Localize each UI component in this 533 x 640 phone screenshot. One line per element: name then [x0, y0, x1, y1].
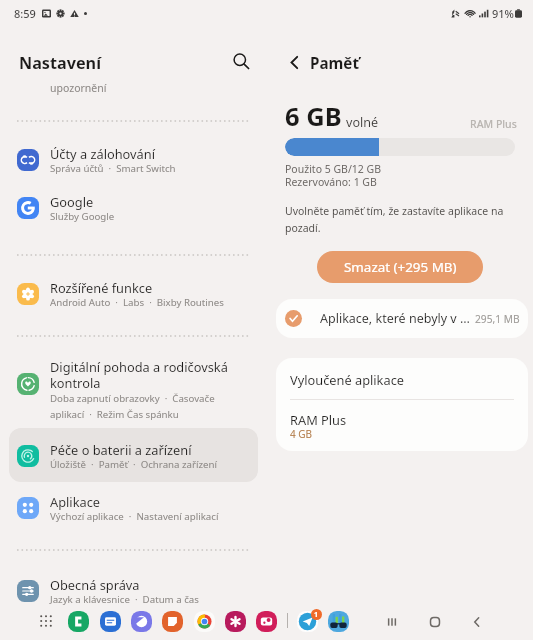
button[interactable]: Aplikace [9, 487, 257, 541]
button[interactable]: Messages [100, 611, 121, 632]
staticText: 1 [314, 610, 319, 620]
button[interactable]: Camera [256, 611, 277, 632]
staticText: 295,1 MB [475, 312, 520, 326]
button[interactable]: Vyloučené aplikace [276, 358, 528, 400]
button[interactable]: Aplikace, které nebyly v … [276, 299, 528, 338]
staticText: Účty a zálohování [50, 145, 155, 162]
button[interactable]: Účty a zálohování [9, 139, 257, 193]
button[interactable]: Chrome [194, 611, 215, 632]
staticText: volné [346, 114, 379, 131]
button[interactable]: Phone [68, 611, 89, 632]
staticText: 8:59 [14, 6, 36, 21]
staticText: RAM Plus [470, 117, 517, 131]
staticText: Rozšířené funkce [50, 279, 153, 296]
button[interactable]: Google [9, 187, 257, 241]
button[interactable]: Internet [131, 611, 152, 632]
button[interactable]: Search [226, 46, 256, 76]
staticText: 6 GB [285, 99, 342, 134]
staticText: Android Auto · Labs · Bixby Routines [50, 296, 224, 309]
staticText: Použito 5 GB/12 GB [285, 162, 382, 176]
button[interactable]: Gallery [225, 611, 246, 632]
button[interactable]: Home [424, 611, 446, 633]
button[interactable]: Back [466, 611, 488, 633]
button[interactable]: Péče o baterii a zařízení [9, 435, 257, 489]
staticText: upozornění [50, 81, 107, 95]
button[interactable]: RAM Plus [276, 400, 528, 451]
staticText: Google [50, 193, 94, 210]
staticText: 91% [492, 6, 514, 21]
button[interactable]: Glasses [328, 611, 349, 632]
staticText: Výchozí aplikace · Nastavení aplikací [50, 510, 219, 523]
button[interactable]: Digitální pohoda a rodičovská kontrola [9, 352, 257, 428]
staticText: Obecná správa [50, 576, 140, 593]
staticText: Rezervováno: 1 GB [285, 175, 377, 189]
button[interactable]: Smazat (+295 MB) [317, 251, 483, 283]
staticText: Služby Google [50, 210, 115, 223]
staticText: Doba zapnutí obrazovky · Časovače aplika… [50, 392, 235, 421]
staticText: Smazat (+295 MB) [344, 258, 457, 276]
staticText: Aplikace, které nebyly v … [320, 310, 470, 327]
button[interactable]: Back [280, 48, 308, 76]
staticText: Vyloučené aplikace [290, 371, 404, 388]
staticText: Péče o baterii a zařízení [50, 441, 192, 458]
staticText: Aplikace [50, 493, 101, 510]
staticText: Nastavení [19, 52, 101, 74]
staticText: Paměť [310, 53, 359, 74]
staticText: Správa účtů · Smart Switch [50, 162, 176, 175]
staticText: Úložiště · Paměť · Ochrana zařízení [50, 458, 218, 471]
button[interactable]: Notes [162, 611, 183, 632]
button[interactable]: Recents [381, 611, 403, 633]
staticText: Uvolněte paměť tím, že zastavíte aplikac… [285, 204, 513, 235]
button[interactable]: Obecná správa [9, 570, 257, 624]
staticText: RAM Plus [290, 411, 347, 428]
staticText: 4 GB [290, 427, 313, 441]
button[interactable]: Telegram [297, 611, 318, 632]
button[interactable]: Rozšířené funkce [9, 273, 257, 327]
staticText: Jazyk a klávesnice · Datum a čas [50, 593, 199, 606]
button[interactable]: All apps [36, 611, 56, 631]
staticText: Digitální pohoda a rodičovská kontrola [50, 358, 235, 392]
